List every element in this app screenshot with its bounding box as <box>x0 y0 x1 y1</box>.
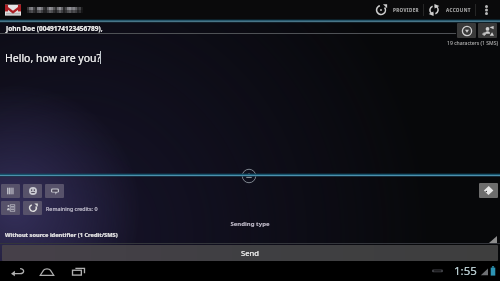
staticText: ACCOUNT <box>446 7 471 13</box>
button[interactable]: Send <box>2 245 498 261</box>
staticText: PROVIDER <box>393 7 419 13</box>
button[interactable]: Resize panels <box>241 168 257 184</box>
staticText: 19 characters (1 SMS) <box>0 40 498 47</box>
staticText: Sending type <box>0 220 500 228</box>
button[interactable]: Add contact <box>478 23 497 38</box>
button[interactable]: Sending type <box>2 230 500 244</box>
button[interactable]: Provider <box>371 0 423 20</box>
staticText: Send <box>241 248 259 258</box>
staticText: 1:55 <box>454 263 477 279</box>
button[interactable]: Barcode <box>1 184 20 198</box>
button[interactable]: Tag <box>479 183 498 198</box>
button[interactable]: Account <box>424 0 475 20</box>
button[interactable]: Back <box>6 261 28 281</box>
staticText: Without source identifier (1 Credit/SMS) <box>5 231 118 239</box>
button[interactable]: Recent apps <box>67 261 89 281</box>
button[interactable]: App icon <box>5 3 21 17</box>
button[interactable]: Home <box>36 261 58 281</box>
button[interactable]: More options <box>476 0 497 20</box>
staticText: Hello, how are you? <box>5 51 102 65</box>
button[interactable]: Refresh credits <box>23 201 42 215</box>
button[interactable]: Message templates <box>45 184 64 198</box>
button[interactable]: Choose recipient <box>457 23 476 38</box>
staticText: Remaining credits: 0 <box>46 205 98 212</box>
button[interactable]: Contacts <box>1 201 20 215</box>
staticText: John Doe (0049174123456789), <box>6 24 103 33</box>
button[interactable]: Emoji <box>23 184 42 198</box>
